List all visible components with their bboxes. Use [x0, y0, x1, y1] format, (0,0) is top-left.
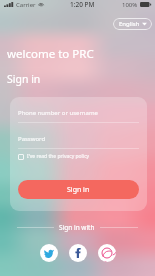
- staticText: Sign in with: [59, 223, 95, 232]
- staticText: Phone number or username: [18, 109, 98, 117]
- button[interactable]: Sign in with Twitter: [40, 244, 58, 262]
- button[interactable]: Sign in with Dribbble: [98, 244, 116, 262]
- button[interactable]: English: [113, 18, 152, 30]
- button[interactable]: I've read the privacy policy: [18, 153, 90, 160]
- staticText: welcome to PRC: [7, 46, 94, 62]
- staticText: Carrier: [16, 1, 36, 9]
- staticText: Sign in: [67, 185, 90, 195]
- staticText: 100%: [122, 1, 138, 9]
- button[interactable]: Sign in with Facebook: [69, 244, 87, 262]
- staticText: Password: [18, 135, 46, 143]
- staticText: English: [119, 20, 140, 28]
- staticText: I've read the privacy policy: [27, 153, 90, 160]
- button[interactable]: Sign in: [18, 180, 139, 199]
- staticText: Sign in: [7, 72, 41, 86]
- staticText: 1:20 PM: [70, 0, 95, 9]
